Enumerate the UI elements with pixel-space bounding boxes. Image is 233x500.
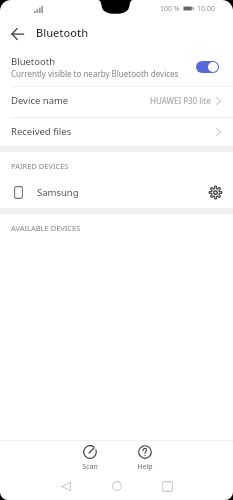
staticText: Bluetooth (36, 25, 89, 40)
staticText: Samsung (37, 186, 79, 199)
staticText: 10.00 (197, 4, 215, 14)
button[interactable]: Bluetooth (0, 48, 233, 86)
staticText: Bluetooth (11, 55, 56, 68)
button[interactable]: Help (124, 441, 165, 471)
staticText: AVAILABLE DEVICES (11, 223, 81, 233)
staticText: 100 % (160, 4, 180, 14)
button[interactable]: Device name (0, 87, 233, 117)
button[interactable]: Scan (69, 441, 110, 471)
button[interactable]: Recent apps (153, 472, 181, 500)
button[interactable]: Device settings (207, 184, 224, 201)
staticText: PAIRED DEVICES (11, 161, 69, 171)
button[interactable]: Bluetooth on (196, 61, 219, 73)
staticText: Received files (11, 125, 72, 138)
button[interactable]: Received files (0, 118, 233, 146)
button[interactable]: Back (4, 21, 30, 46)
staticText: Scan (82, 462, 98, 471)
staticText: HUAWEI P30 lite (150, 95, 211, 106)
staticText: Device name (11, 94, 69, 107)
button[interactable]: Back (52, 472, 80, 500)
button[interactable]: Samsung (0, 178, 233, 207)
staticText: Currently visible to nearby Bluetooth de… (11, 68, 179, 79)
button[interactable]: Home (103, 472, 131, 500)
staticText: Help (137, 462, 153, 471)
